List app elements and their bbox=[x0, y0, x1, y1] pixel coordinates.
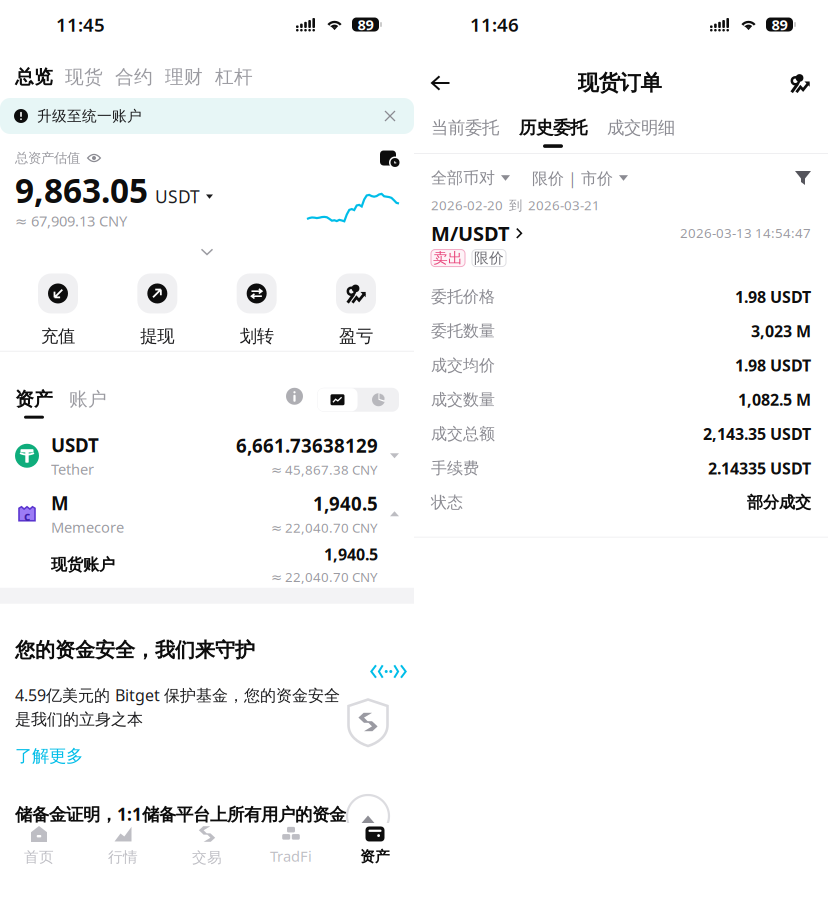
button[interactable]: 合约 bbox=[115, 65, 153, 88]
staticText: 现货账户 bbox=[51, 555, 115, 575]
staticText: 账户 bbox=[69, 388, 107, 411]
button[interactable]: History bbox=[377, 148, 399, 167]
staticText: 6,661.73638129 bbox=[236, 433, 378, 458]
staticText: 提现 bbox=[140, 325, 174, 347]
staticText: 储备金证明，1:1储备平台上所有用户的资金 bbox=[15, 802, 346, 825]
staticText: ≈ 22,040.70 CNY bbox=[271, 519, 378, 536]
staticText: 总资产估值 bbox=[15, 150, 80, 166]
button[interactable]: 首页 bbox=[1, 823, 77, 869]
button[interactable]: 历史委托 bbox=[519, 117, 587, 148]
staticText: 成交均价 bbox=[431, 355, 495, 375]
staticText: 限价 bbox=[474, 249, 504, 267]
button[interactable]: 账户 bbox=[69, 388, 107, 411]
staticText: 2026-02-20 到 2026-03-21 bbox=[431, 196, 600, 214]
button[interactable]: USDT bbox=[0, 428, 414, 484]
staticText: 1,082.5 M bbox=[738, 389, 811, 410]
staticText: c bbox=[24, 508, 30, 524]
staticText: 当前委托 bbox=[431, 117, 499, 138]
staticText: 历史委托 bbox=[519, 117, 587, 138]
staticText: 4.59亿美元的 Bitget 保护基金，您的资金安全 bbox=[15, 684, 340, 705]
staticText: 委托数量 bbox=[431, 321, 495, 341]
staticText: 1.98 USDT bbox=[735, 286, 811, 307]
staticText: ≈ 22,040.70 CNY bbox=[271, 568, 378, 586]
staticText: 划转 bbox=[240, 325, 274, 347]
button[interactable]: c bbox=[0, 486, 414, 542]
staticText: 89 bbox=[357, 15, 373, 34]
staticText: 现货 bbox=[65, 65, 103, 88]
button[interactable]: 现货 bbox=[65, 65, 103, 88]
button[interactable]: 行情 bbox=[85, 823, 161, 869]
button[interactable]: Filter bbox=[795, 170, 811, 185]
staticText: 卖出 bbox=[433, 249, 463, 267]
button[interactable]: 当前委托 bbox=[431, 117, 499, 138]
button[interactable]: 资产 bbox=[15, 388, 53, 419]
staticText: 限价 | 市价 bbox=[532, 167, 613, 189]
button[interactable]: Expand bbox=[197, 244, 216, 259]
staticText: 理财 bbox=[165, 65, 203, 88]
button[interactable]: 全部币对 bbox=[431, 168, 510, 188]
staticText: USDT bbox=[51, 433, 99, 457]
staticText: 3,023 M bbox=[751, 320, 811, 342]
staticText: 2026-03-13 14:54:47 bbox=[680, 224, 811, 242]
button[interactable]: Info bbox=[286, 388, 303, 405]
staticText: 了解更多 bbox=[15, 745, 83, 766]
button[interactable]: 限价 | 市价 bbox=[532, 167, 628, 189]
staticText: 您的资金安全，我们来守护 bbox=[15, 638, 255, 662]
staticText: 充值 bbox=[41, 325, 75, 347]
staticText: 手续费 bbox=[431, 458, 479, 478]
button[interactable]: 了解更多 bbox=[15, 745, 83, 766]
staticText: Tether bbox=[51, 459, 94, 479]
staticText: 升级至统一账户 bbox=[37, 107, 142, 125]
button[interactable]: 提现 bbox=[124, 273, 190, 347]
staticText: Memecore bbox=[51, 517, 124, 537]
staticText: 是我们的立身之本 bbox=[15, 710, 143, 729]
staticText: 委托价格 bbox=[431, 287, 495, 307]
button[interactable]: Back bbox=[425, 69, 456, 96]
button[interactable]: 资产 bbox=[337, 823, 413, 869]
staticText: 成交总额 bbox=[431, 424, 495, 444]
button[interactable]: 交易 bbox=[169, 823, 245, 869]
staticText: 1.98 USDT bbox=[735, 355, 811, 376]
button[interactable]: 总览 bbox=[15, 65, 53, 88]
staticText: 杠杆 bbox=[215, 65, 253, 88]
button[interactable]: M/USDT bbox=[414, 220, 828, 267]
button[interactable]: Dismiss bbox=[380, 106, 400, 126]
staticText: 交易 bbox=[192, 848, 222, 866]
button[interactable]: 充值 bbox=[25, 273, 91, 347]
button[interactable]: Chart view bbox=[317, 388, 358, 412]
staticText: 成交数量 bbox=[431, 390, 495, 409]
button[interactable]: 理财 bbox=[165, 65, 203, 88]
staticText: 11:45 bbox=[56, 12, 105, 37]
staticText: 成交明细 bbox=[607, 117, 675, 138]
staticText: 9,863.05 bbox=[15, 168, 148, 212]
button[interactable]: 现货账户 bbox=[0, 542, 414, 588]
staticText: 1,940.5 bbox=[324, 544, 378, 565]
staticText: USDT bbox=[155, 185, 200, 208]
staticText: 首页 bbox=[24, 848, 54, 866]
staticText: 2,143.35 USDT bbox=[703, 423, 811, 444]
button[interactable]: 盈亏 bbox=[323, 273, 389, 347]
staticText: 资产 bbox=[15, 388, 53, 411]
staticText: 11:46 bbox=[470, 12, 519, 37]
staticText: 89 bbox=[771, 15, 787, 34]
staticText: TradFi bbox=[270, 846, 312, 866]
staticText: 部分成交 bbox=[747, 493, 811, 512]
staticText: 状态 bbox=[431, 493, 463, 512]
button[interactable]: TradFi bbox=[253, 823, 329, 869]
staticText: 盈亏 bbox=[339, 325, 373, 347]
staticText: M bbox=[51, 491, 69, 515]
button[interactable]: Pie view bbox=[358, 388, 399, 412]
staticText: 总览 bbox=[15, 65, 53, 88]
staticText: ≈ 45,867.38 CNY bbox=[271, 461, 378, 478]
button[interactable]: Positions bbox=[783, 66, 817, 100]
button[interactable]: 划转 bbox=[224, 273, 290, 347]
button[interactable]: 杠杆 bbox=[215, 65, 253, 88]
staticText: 2.14335 USDT bbox=[708, 458, 811, 479]
staticText: M/USDT bbox=[431, 220, 510, 247]
staticText: 合约 bbox=[115, 65, 153, 88]
button[interactable]: 成交明细 bbox=[607, 117, 675, 138]
button[interactable]: USDT bbox=[155, 185, 213, 212]
staticText: 现货订单 bbox=[577, 70, 661, 96]
staticText: 全部币对 bbox=[431, 168, 495, 188]
staticText: ≈ 67,909.13 CNY bbox=[15, 211, 127, 230]
